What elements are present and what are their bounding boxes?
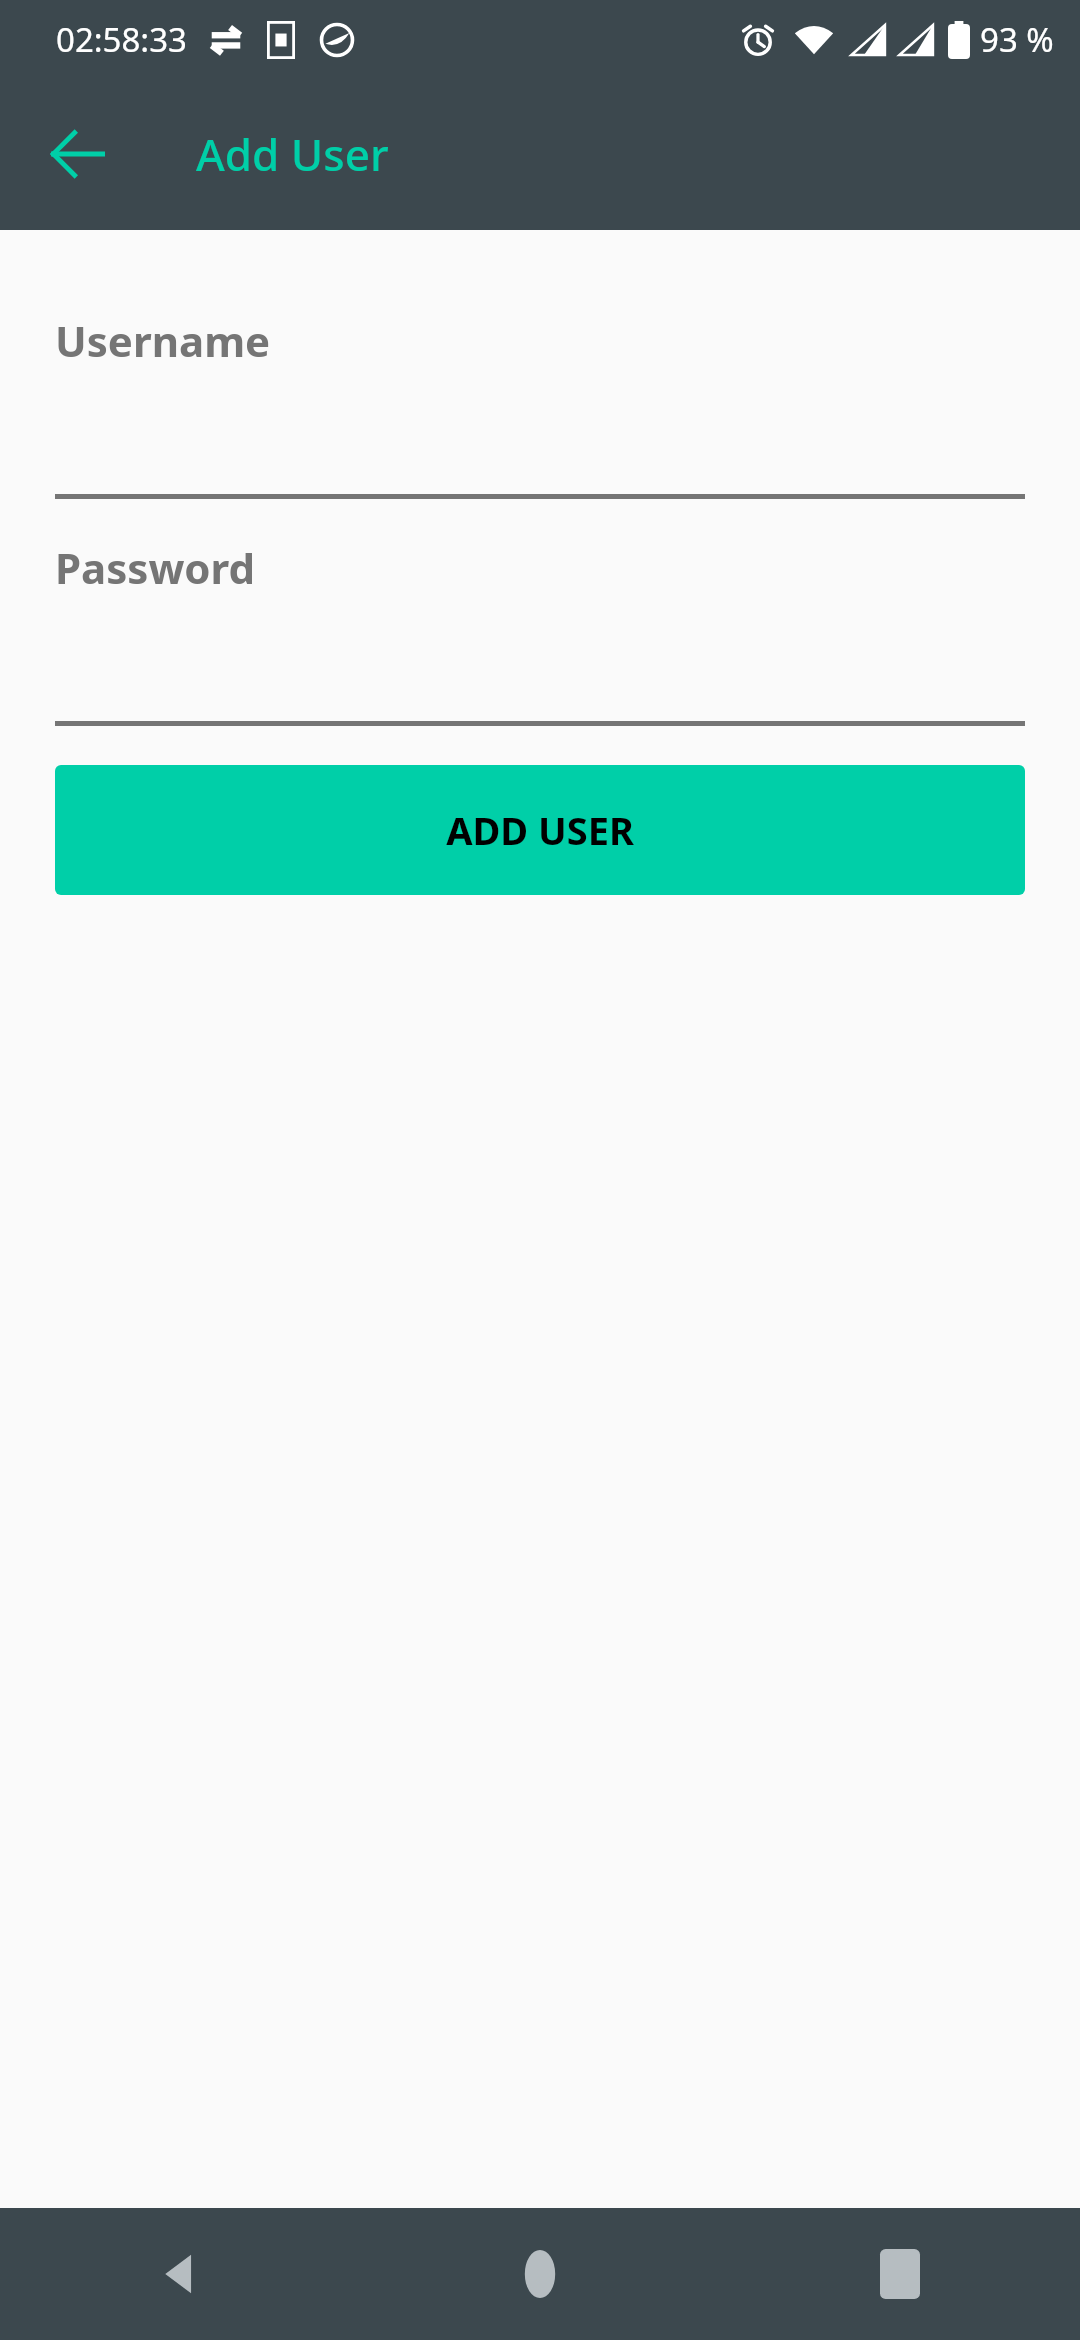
staticText: Username [55,312,271,369]
button[interactable]: Home [360,2208,720,2340]
button[interactable]: ADD USER [55,765,1025,895]
button[interactable] [55,596,1025,726]
button[interactable]: Recent apps [720,2208,1080,2340]
button[interactable]: Back [0,2208,360,2340]
button[interactable]: Back [30,106,126,202]
staticText: ADD USER [446,804,634,856]
staticText: Password [55,539,256,596]
staticText: 93 % [980,17,1054,62]
staticText: Add User [196,124,389,184]
staticText: 02:58:33 [56,17,187,62]
button[interactable] [55,369,1025,499]
